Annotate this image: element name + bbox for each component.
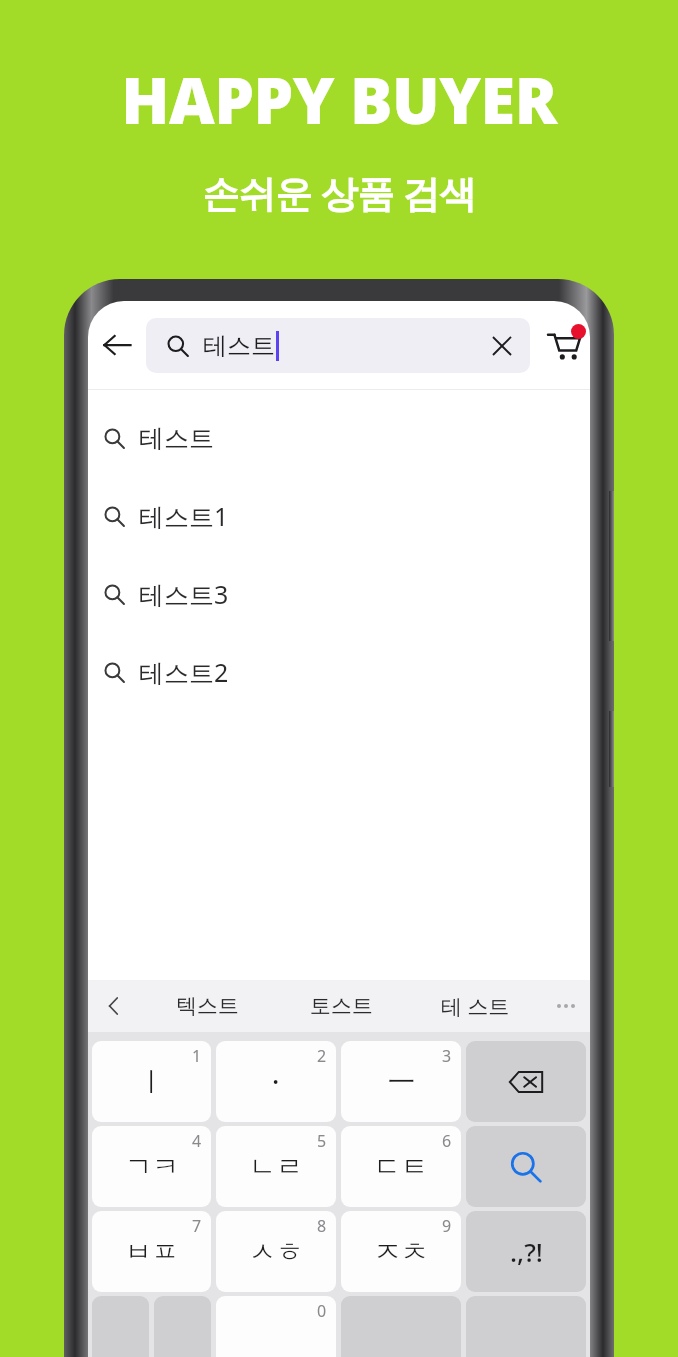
staticText: ㄱㅋ [125, 1150, 179, 1184]
staticText: 손쉬운 상품 검색 [202, 167, 476, 218]
button[interactable]: 4 [92, 1126, 211, 1207]
button[interactable]: 5 [216, 1126, 336, 1207]
button[interactable]: 9 [341, 1211, 461, 1292]
button[interactable]: 테스트 [146, 318, 530, 373]
staticText: HAPPY BUYER [121, 57, 557, 143]
staticText: 一 [388, 1065, 415, 1099]
button[interactable]: Clear search [478, 322, 526, 370]
staticText: 9 [442, 1215, 452, 1237]
staticText: 테스트1 [139, 499, 229, 533]
button[interactable]: Cart [540, 301, 588, 389]
staticText: 0 [317, 1300, 327, 1322]
staticText: 5 [317, 1130, 327, 1152]
staticText: 테스트2 [139, 655, 229, 689]
button[interactable]: Search [466, 1126, 586, 1207]
button[interactable]: 텍스트 [140, 980, 274, 1032]
button[interactable]: Back [88, 301, 146, 389]
staticText: ㄷㅌ [374, 1150, 428, 1184]
button[interactable]: Backspace [466, 1041, 586, 1122]
staticText: ㅈㅊ [374, 1235, 428, 1269]
staticText: · [272, 1063, 280, 1100]
staticText: ㅣ [138, 1065, 165, 1099]
button[interactable]: Previous suggestions [88, 980, 140, 1032]
staticText: 텍스트 [176, 993, 239, 1019]
button[interactable]: 8 [216, 1211, 336, 1292]
staticText: 8 [317, 1215, 327, 1237]
staticText: 1 [192, 1045, 202, 1067]
staticText: 테 스트 [441, 992, 510, 1021]
staticText: 4 [192, 1130, 202, 1152]
staticText: 테스트 [203, 331, 275, 361]
staticText: 7 [192, 1215, 202, 1237]
staticText: ㅂㅍ [125, 1235, 179, 1269]
staticText: 테스트3 [139, 577, 229, 611]
button[interactable]: 0 [216, 1296, 336, 1357]
staticText: ㅅㅎ [249, 1235, 303, 1269]
staticText: 3 [442, 1045, 452, 1067]
button[interactable]: 2 [216, 1041, 336, 1122]
button[interactable]: 7 [92, 1211, 211, 1292]
staticText: 2 [317, 1045, 327, 1067]
button[interactable]: 테스트2 [88, 633, 590, 711]
button[interactable]: .,?! [466, 1211, 586, 1292]
staticText: .,?! [510, 1234, 543, 1269]
button[interactable]: 토스트 [274, 980, 408, 1032]
button[interactable]: 테스트3 [88, 555, 590, 633]
button[interactable]: 테 스트 [408, 980, 542, 1032]
staticText: 6 [442, 1130, 452, 1152]
button[interactable]: 테스트1 [88, 477, 590, 555]
button[interactable]: 1 [92, 1041, 211, 1122]
button[interactable]: 3 [341, 1041, 461, 1122]
button[interactable]: 테스트 [88, 399, 590, 477]
button[interactable]: 6 [341, 1126, 461, 1207]
button[interactable]: More suggestions [542, 980, 590, 1032]
staticText: 토스트 [310, 993, 373, 1019]
staticText: 테스트 [139, 423, 214, 454]
staticText: ㄴㄹ [249, 1150, 303, 1184]
